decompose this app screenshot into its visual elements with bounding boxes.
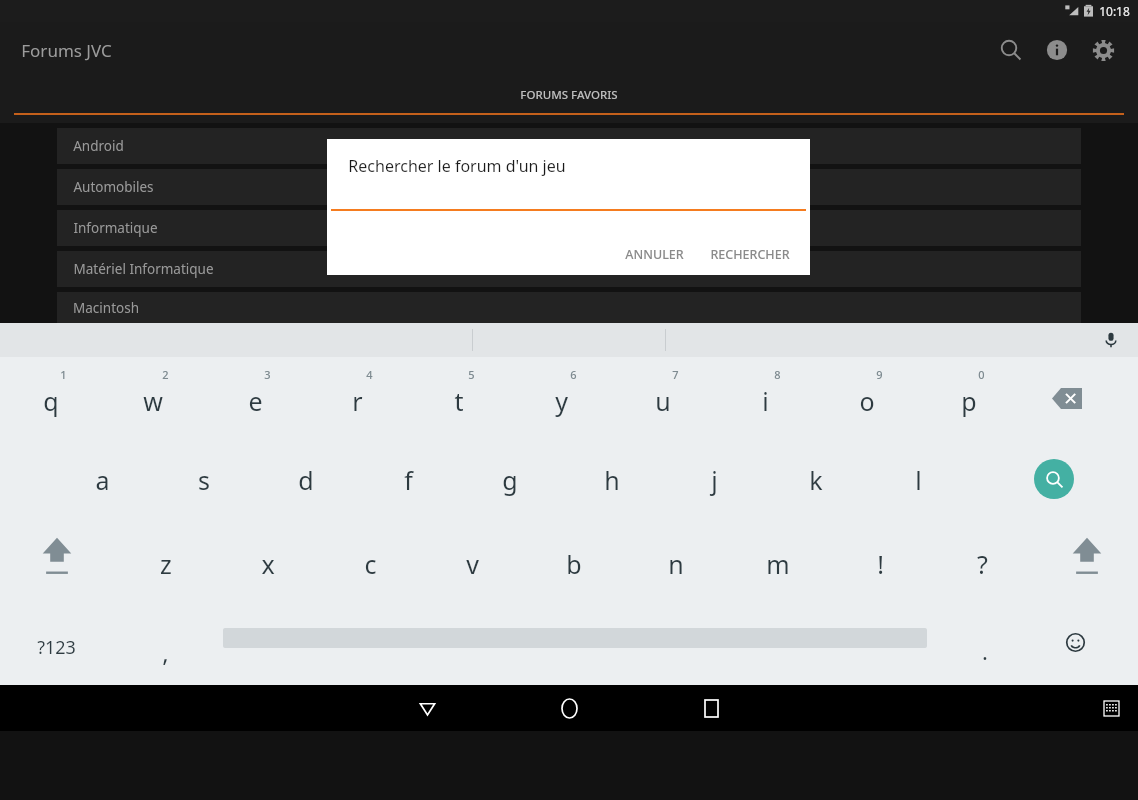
staticText: 9 (876, 367, 883, 382)
button[interactable]: 0 (918, 357, 1020, 441)
staticText: Forums JVC (21, 39, 112, 62)
staticText: . (982, 636, 988, 666)
staticText: k (809, 463, 823, 497)
staticText: b (566, 547, 582, 581)
staticText: 1 (60, 367, 67, 382)
staticText: z (160, 547, 172, 581)
button[interactable]: Settings (1080, 27, 1126, 73)
staticText: d (298, 463, 314, 497)
button[interactable]: Backspace (1050, 381, 1084, 415)
staticText: 6 (570, 367, 577, 382)
staticText: p (961, 384, 977, 418)
staticText: 5 (468, 367, 475, 382)
button[interactable]: z (115, 525, 217, 609)
staticText: 2 (162, 367, 169, 382)
button[interactable]: a (51, 441, 153, 525)
staticText: RECHERCHER (710, 246, 790, 263)
button[interactable]: Home (547, 686, 591, 730)
button[interactable]: d (255, 441, 357, 525)
button[interactable]: Automobiles (57, 169, 1081, 205)
button[interactable]: 8 (714, 357, 816, 441)
staticText: v (466, 547, 479, 581)
staticText: 10:18 (1099, 3, 1130, 19)
staticText: 4 (366, 367, 373, 382)
staticText: g (502, 463, 518, 497)
button[interactable]: 1 (0, 357, 102, 441)
button[interactable]: Android (57, 128, 1081, 164)
staticText: ANNULER (625, 246, 684, 263)
staticText: x (261, 547, 275, 581)
button[interactable]: Shift (1052, 535, 1122, 591)
button[interactable]: Information (1034, 27, 1080, 73)
staticText: h (604, 463, 620, 497)
staticText: 7 (672, 367, 679, 382)
button[interactable]: g (459, 441, 561, 525)
button[interactable]: Keyboard (1098, 695, 1124, 721)
staticText: Rechercher le forum d'un jeu (348, 155, 566, 177)
button[interactable]: l (867, 441, 969, 525)
button[interactable]: Shift (22, 535, 92, 591)
button[interactable]: 9 (816, 357, 918, 441)
staticText: j (711, 463, 718, 497)
button[interactable]: 6 (510, 357, 612, 441)
button[interactable]: Voice input (1100, 329, 1122, 351)
staticText: FORUMS FAVORIS (520, 87, 618, 103)
staticText: q (43, 384, 59, 418)
staticText: l (915, 463, 922, 497)
staticText: r (352, 384, 363, 418)
staticText: 0 (978, 367, 985, 382)
button[interactable]: ? (931, 525, 1033, 609)
button[interactable]: j (663, 441, 765, 525)
staticText: m (766, 547, 790, 581)
button[interactable]: Back (405, 686, 449, 730)
button[interactable]: Macintosh (57, 292, 1081, 323)
staticText: f (404, 463, 413, 497)
button[interactable]: ANNULER (613, 238, 696, 271)
staticText: Macintosh (73, 299, 139, 317)
staticText: , (162, 636, 169, 669)
staticText: e (248, 384, 263, 418)
button[interactable]: b (523, 525, 625, 609)
button[interactable]: 4 (306, 357, 408, 441)
staticText: o (859, 384, 875, 418)
button[interactable]: Recents (689, 686, 733, 730)
staticText: Informatique (73, 219, 158, 237)
button[interactable]: m (727, 525, 829, 609)
staticText: i (762, 384, 769, 418)
button[interactable]: Informatique (57, 210, 1081, 246)
button[interactable]: Search (1034, 459, 1074, 499)
staticText: ?123 (37, 635, 76, 660)
button[interactable]: n (625, 525, 727, 609)
button[interactable]: RECHERCHER (698, 238, 802, 271)
button[interactable]: 3 (204, 357, 306, 441)
button[interactable]: x (217, 525, 319, 609)
button[interactable]: 5 (408, 357, 510, 441)
staticText: Matériel Informatique (73, 260, 214, 278)
button[interactable]: c (319, 525, 421, 609)
button[interactable]: , (130, 609, 200, 685)
staticText: y (555, 384, 568, 418)
button[interactable]: Emoji (1062, 629, 1088, 655)
button[interactable]: k (765, 441, 867, 525)
staticText: Android (73, 137, 124, 155)
button[interactable]: s (153, 441, 255, 525)
button[interactable]: f (357, 441, 459, 525)
button[interactable]: h (561, 441, 663, 525)
button[interactable]: v (421, 525, 523, 609)
staticText: 3 (264, 367, 271, 382)
button[interactable]: 2 (102, 357, 204, 441)
staticText: ! (877, 547, 884, 581)
button[interactable]: ?123 (14, 609, 98, 685)
staticText: u (655, 384, 671, 418)
button[interactable]: Search (988, 27, 1034, 73)
button[interactable]: ! (829, 525, 931, 609)
button[interactable]: . (950, 609, 1020, 685)
staticText: t (454, 384, 464, 418)
button[interactable]: FORUMS FAVORIS (0, 78, 1138, 115)
button[interactable]: 7 (612, 357, 714, 441)
staticText: ? (977, 547, 988, 581)
button[interactable]: Matériel Informatique (57, 251, 1081, 287)
staticText: n (668, 547, 684, 581)
staticText: a (95, 463, 110, 497)
